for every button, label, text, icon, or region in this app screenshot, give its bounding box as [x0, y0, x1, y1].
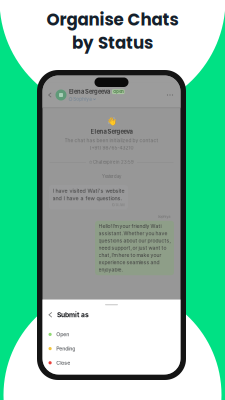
- staticText: enjoyable.: [98, 267, 122, 273]
- staticText: Submit as: [57, 311, 89, 319]
- button[interactable]: Open: [42, 327, 180, 341]
- staticText: experience seamless and: [98, 259, 159, 265]
- staticText: 👋: [106, 116, 116, 125]
- button[interactable]: Submit as: [42, 309, 180, 320]
- staticText: Sophiya: [73, 96, 92, 102]
- staticText: Open: [113, 89, 123, 94]
- staticText: Hello! I'm your friendly Wati: [98, 223, 161, 229]
- staticText: Yesterday: [102, 174, 121, 179]
- button[interactable]: Close: [42, 356, 180, 370]
- staticText: Elena Sergeeva: [90, 128, 132, 135]
- staticText: I have visited Wati's website: [52, 187, 124, 194]
- staticText: by Status: [72, 31, 153, 55]
- staticText: The chat has been initialized by contact: [64, 138, 158, 143]
- staticText: need support, or just want to: [98, 245, 166, 251]
- staticText: chat, I'm here to make your: [98, 252, 161, 258]
- staticText: Sophiya: [157, 214, 170, 219]
- button[interactable]: Pending: [42, 341, 180, 356]
- staticText: Open: [56, 331, 69, 338]
- staticText: Pending: [56, 345, 75, 352]
- button[interactable]: Back: [47, 89, 53, 100]
- staticText: questions about our products,: [98, 238, 170, 244]
- staticText: (+91) 98765-43210: [89, 145, 133, 151]
- staticText: assistant. Whether you have: [98, 230, 167, 236]
- staticText: ⏱ Chat expire in 23:59: [89, 160, 134, 165]
- staticText: Organise Chats: [46, 8, 178, 31]
- staticText: and I have a few questions.: [52, 195, 122, 202]
- staticText: Elena Sergeeva: [69, 88, 110, 95]
- staticText: 10:14 AM: [111, 203, 124, 207]
- staticText: Close: [56, 360, 70, 366]
- button[interactable]: More options: [164, 89, 176, 100]
